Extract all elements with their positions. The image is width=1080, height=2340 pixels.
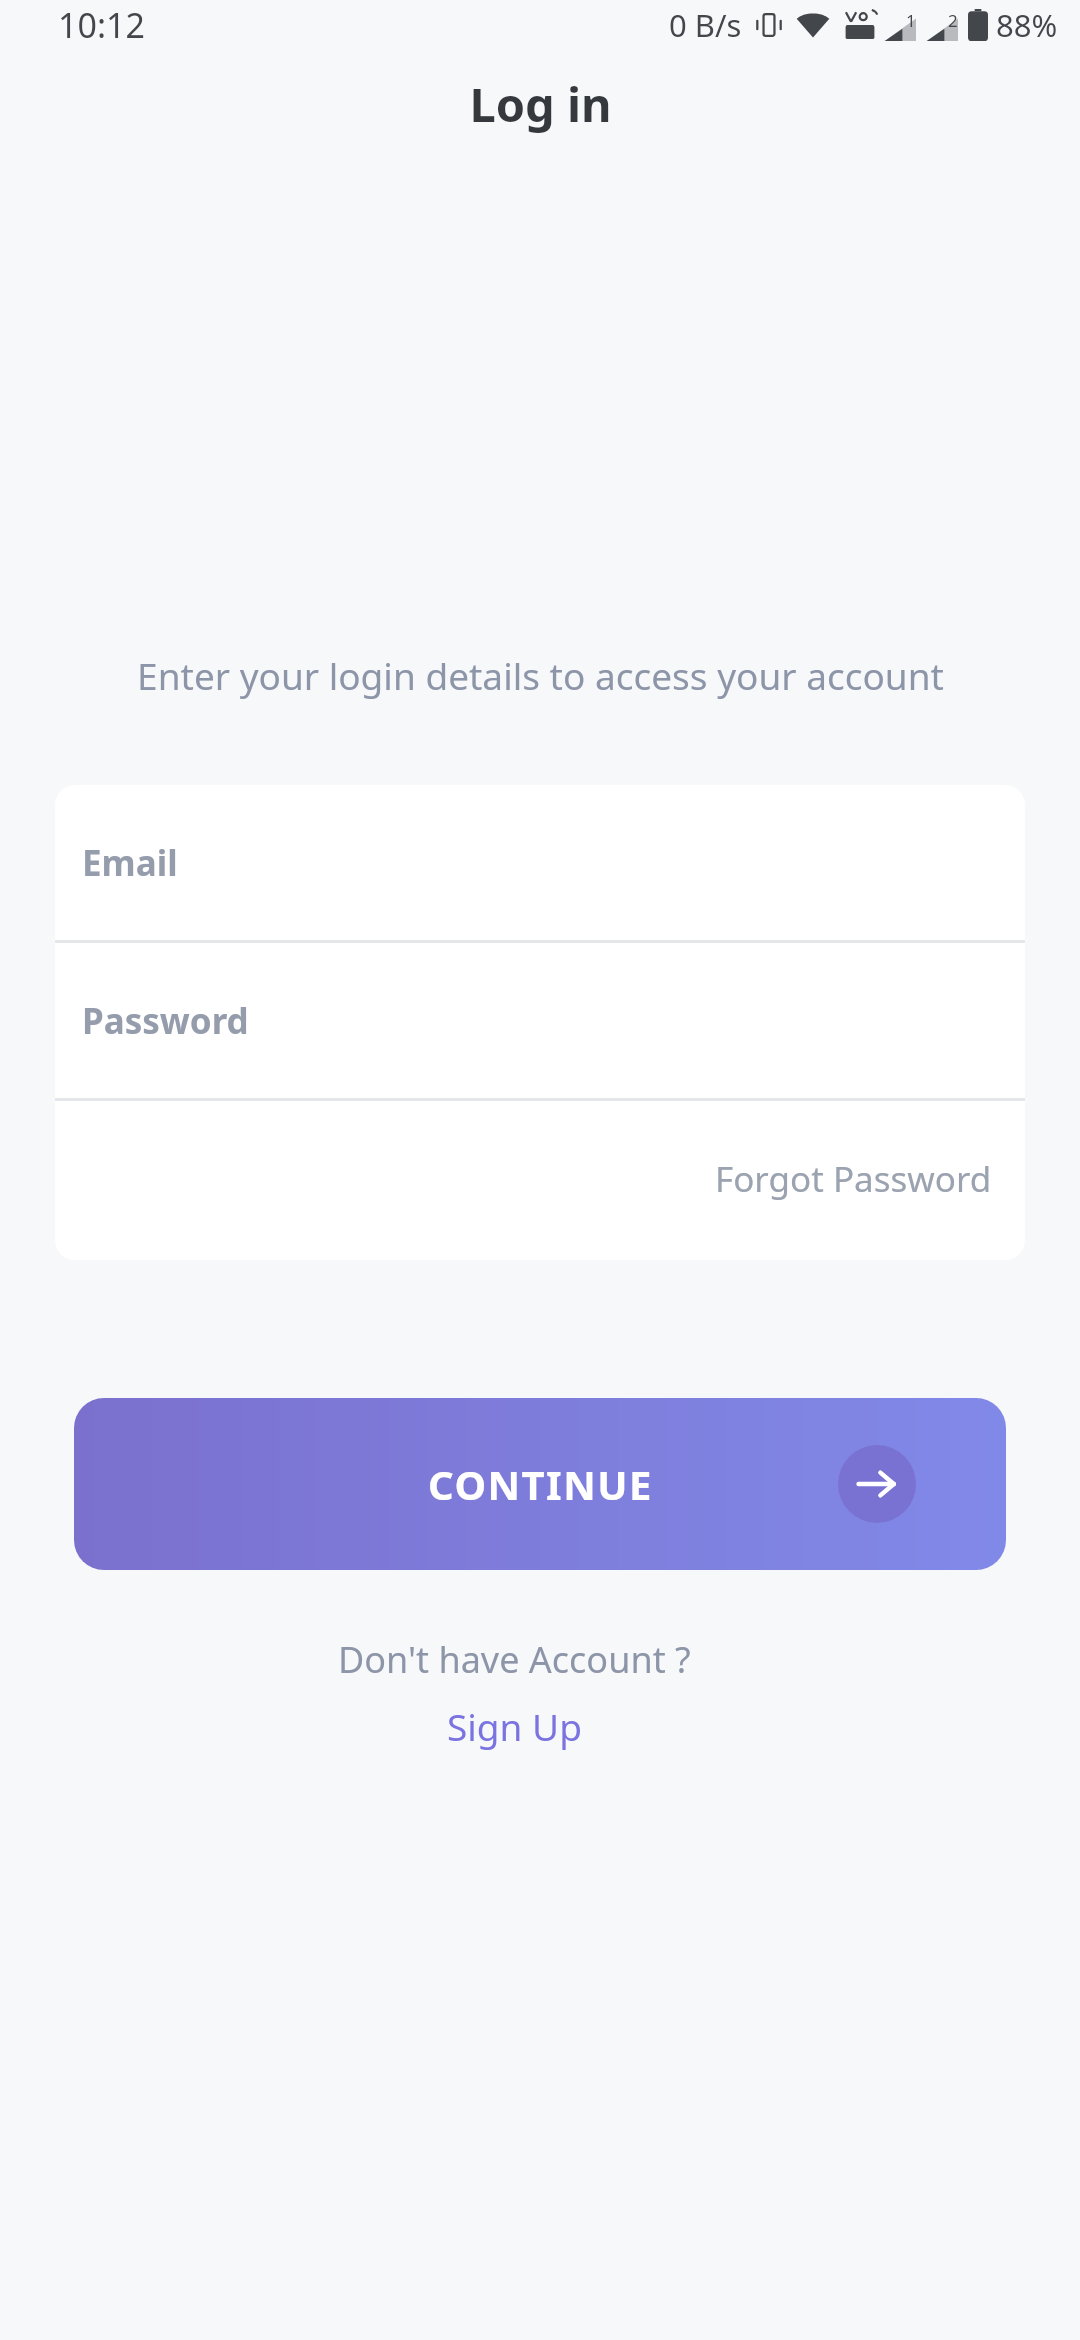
button[interactable]: Forgot Password xyxy=(55,1101,1025,1256)
staticText: Sign Up xyxy=(447,1701,582,1751)
button[interactable]: CONTINUE xyxy=(74,1398,1006,1570)
staticText: 0 B/s xyxy=(669,4,742,46)
button[interactable]: Password xyxy=(55,943,1025,1098)
staticText: 2 xyxy=(948,9,958,32)
staticText: Password xyxy=(82,997,249,1045)
staticText: 1 xyxy=(906,9,916,32)
staticText: Email xyxy=(82,839,178,887)
staticText: CONTINUE xyxy=(428,1457,653,1511)
staticText: Log in xyxy=(469,72,612,136)
staticText: Forgot Password xyxy=(715,1155,992,1203)
other: Continue xyxy=(856,1463,898,1505)
button[interactable]: Email xyxy=(55,785,1025,940)
staticText: Don't have Account ? xyxy=(338,1635,691,1684)
staticText: 10:12 xyxy=(58,2,145,48)
staticText: Enter your login details to access your … xyxy=(137,650,944,700)
staticText: 88% xyxy=(996,4,1058,46)
button[interactable]: Sign Up xyxy=(447,1701,582,1751)
